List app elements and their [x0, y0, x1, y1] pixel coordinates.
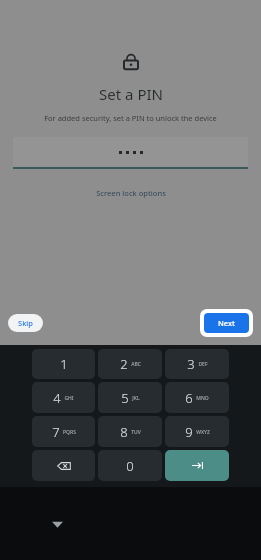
button[interactable]: 8 — [98, 416, 162, 447]
staticText: 4 — [53, 389, 61, 407]
button[interactable]: 4 — [32, 382, 95, 413]
button[interactable]: 5 — [98, 382, 162, 413]
staticText: 0 — [126, 457, 134, 475]
staticText: WXYZ — [196, 429, 210, 436]
staticText: Set a PIN — [99, 84, 163, 104]
staticText: 6 — [185, 389, 193, 407]
button[interactable]: 0 — [98, 450, 162, 481]
staticText: Skip — [18, 318, 33, 328]
button[interactable]: 9 — [165, 416, 229, 447]
staticText: MNO — [196, 395, 209, 402]
button[interactable] — [13, 137, 248, 169]
staticText: Next — [218, 318, 235, 328]
staticText: GHI — [64, 395, 74, 402]
staticText: ABC — [131, 361, 141, 368]
staticText: TUV — [131, 429, 141, 436]
staticText: 9 — [185, 423, 193, 441]
button[interactable]: 1 — [32, 349, 95, 379]
staticText: 1 — [60, 355, 68, 373]
button[interactable]: Enter — [165, 450, 229, 481]
staticText: Screen lock options — [96, 188, 166, 198]
button[interactable]: 3 — [165, 349, 229, 379]
staticText: 5 — [121, 389, 129, 407]
staticText: 3 — [187, 355, 195, 373]
button[interactable]: 2 — [98, 349, 162, 379]
staticText: DEF — [198, 361, 208, 368]
button[interactable]: Next — [204, 313, 249, 333]
button[interactable]: Backspace — [32, 450, 95, 481]
staticText: 7 — [52, 423, 60, 441]
staticText: 8 — [120, 423, 128, 441]
button[interactable]: Screen lock options — [90, 185, 172, 201]
staticText: For added security, set a PIN to unlock … — [44, 113, 217, 123]
staticText: JKL — [132, 395, 140, 402]
staticText: PQRS — [63, 429, 76, 436]
button[interactable]: Hide keyboard — [46, 513, 68, 535]
button[interactable]: 6 — [165, 382, 229, 413]
staticText: 2 — [120, 355, 128, 373]
button[interactable]: 7 — [32, 416, 95, 447]
button[interactable]: Skip — [8, 314, 43, 332]
